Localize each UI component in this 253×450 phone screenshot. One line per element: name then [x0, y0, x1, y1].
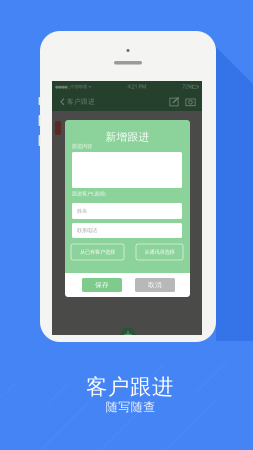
staticText: 客户跟进 [86, 374, 173, 400]
staticText: 联系电话 [77, 227, 97, 234]
button[interactable]: Compose [166, 92, 182, 111]
staticText: 取消 [148, 281, 162, 289]
staticText: 从通讯录选择 [144, 249, 174, 255]
staticText: 72% [182, 83, 192, 90]
button[interactable]: 保存 [82, 278, 122, 292]
staticText: 从已有客户选择 [80, 249, 115, 255]
staticText: 4:21 PM [127, 83, 146, 90]
staticText: 新增跟进 [105, 130, 149, 143]
button[interactable]: 从已有客户选择 [71, 244, 124, 260]
staticText: 保存 [95, 281, 109, 289]
staticText: ●●●●○ 中国联通 ᯤ [55, 84, 92, 89]
staticText: 跟进客户(选填) [72, 190, 106, 197]
staticText: 姓名 [77, 208, 87, 214]
button[interactable]: 从通讯录选择 [136, 244, 183, 260]
staticText: 随写随查 [106, 400, 155, 414]
button[interactable]: 客户跟进 [55, 92, 100, 111]
staticText: 跟进内容 [72, 143, 92, 150]
button[interactable]: Camera [182, 92, 199, 111]
button[interactable]: 取消 [135, 278, 175, 292]
staticText: 客户跟进 [67, 97, 95, 106]
